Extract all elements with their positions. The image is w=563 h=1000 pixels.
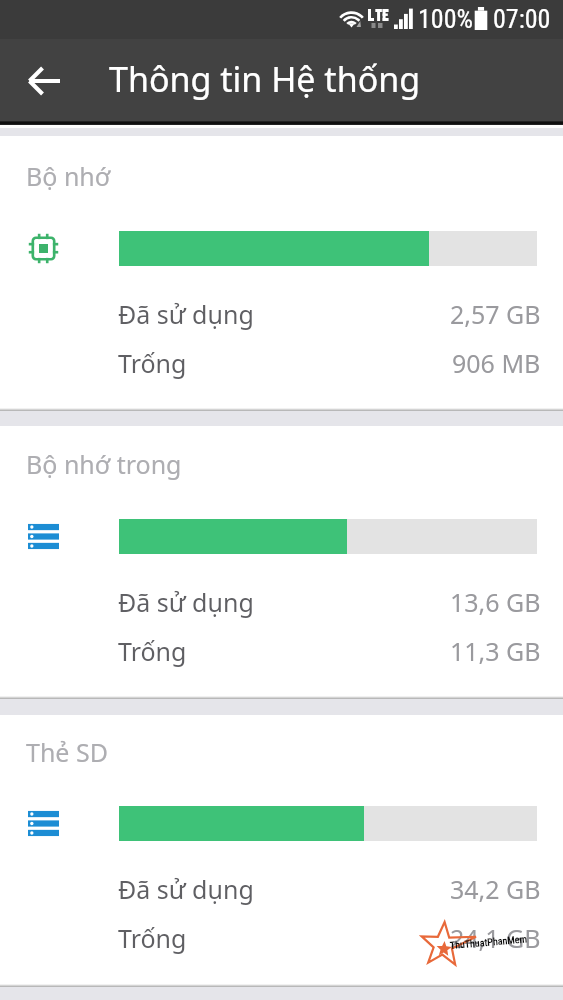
staticText: Thông tin Hệ thống	[109, 56, 421, 102]
staticText: Trống	[118, 634, 187, 668]
button[interactable]: Thẻ SD	[0, 715, 563, 987]
staticText: 34,2 GB	[450, 872, 541, 906]
staticText: Trống	[118, 921, 187, 955]
button[interactable]: Back	[14, 54, 74, 108]
staticText: Đã sử dụng	[118, 297, 254, 331]
staticText: Bộ nhớ trong	[26, 447, 182, 481]
staticText: 11,3 GB	[450, 634, 541, 668]
staticText: ThuThuatPhanMem	[449, 933, 528, 952]
button[interactable]: Bộ nhớ	[0, 136, 563, 411]
staticText: 07:00	[493, 4, 551, 34]
staticText: Thẻ SD	[26, 735, 108, 769]
staticText: Bộ nhớ	[26, 159, 111, 193]
staticText: Trống	[118, 346, 187, 380]
staticText: 906 MB	[452, 346, 541, 380]
staticText: Đã sử dụng	[118, 872, 254, 906]
staticText: 100%	[418, 4, 473, 34]
staticText: Đã sử dụng	[118, 585, 254, 619]
staticText: 2,57 GB	[450, 297, 541, 331]
staticText: 13,6 GB	[450, 585, 541, 619]
button[interactable]: Bộ nhớ trong	[0, 426, 563, 699]
staticText: 24,1 GB	[450, 921, 541, 955]
